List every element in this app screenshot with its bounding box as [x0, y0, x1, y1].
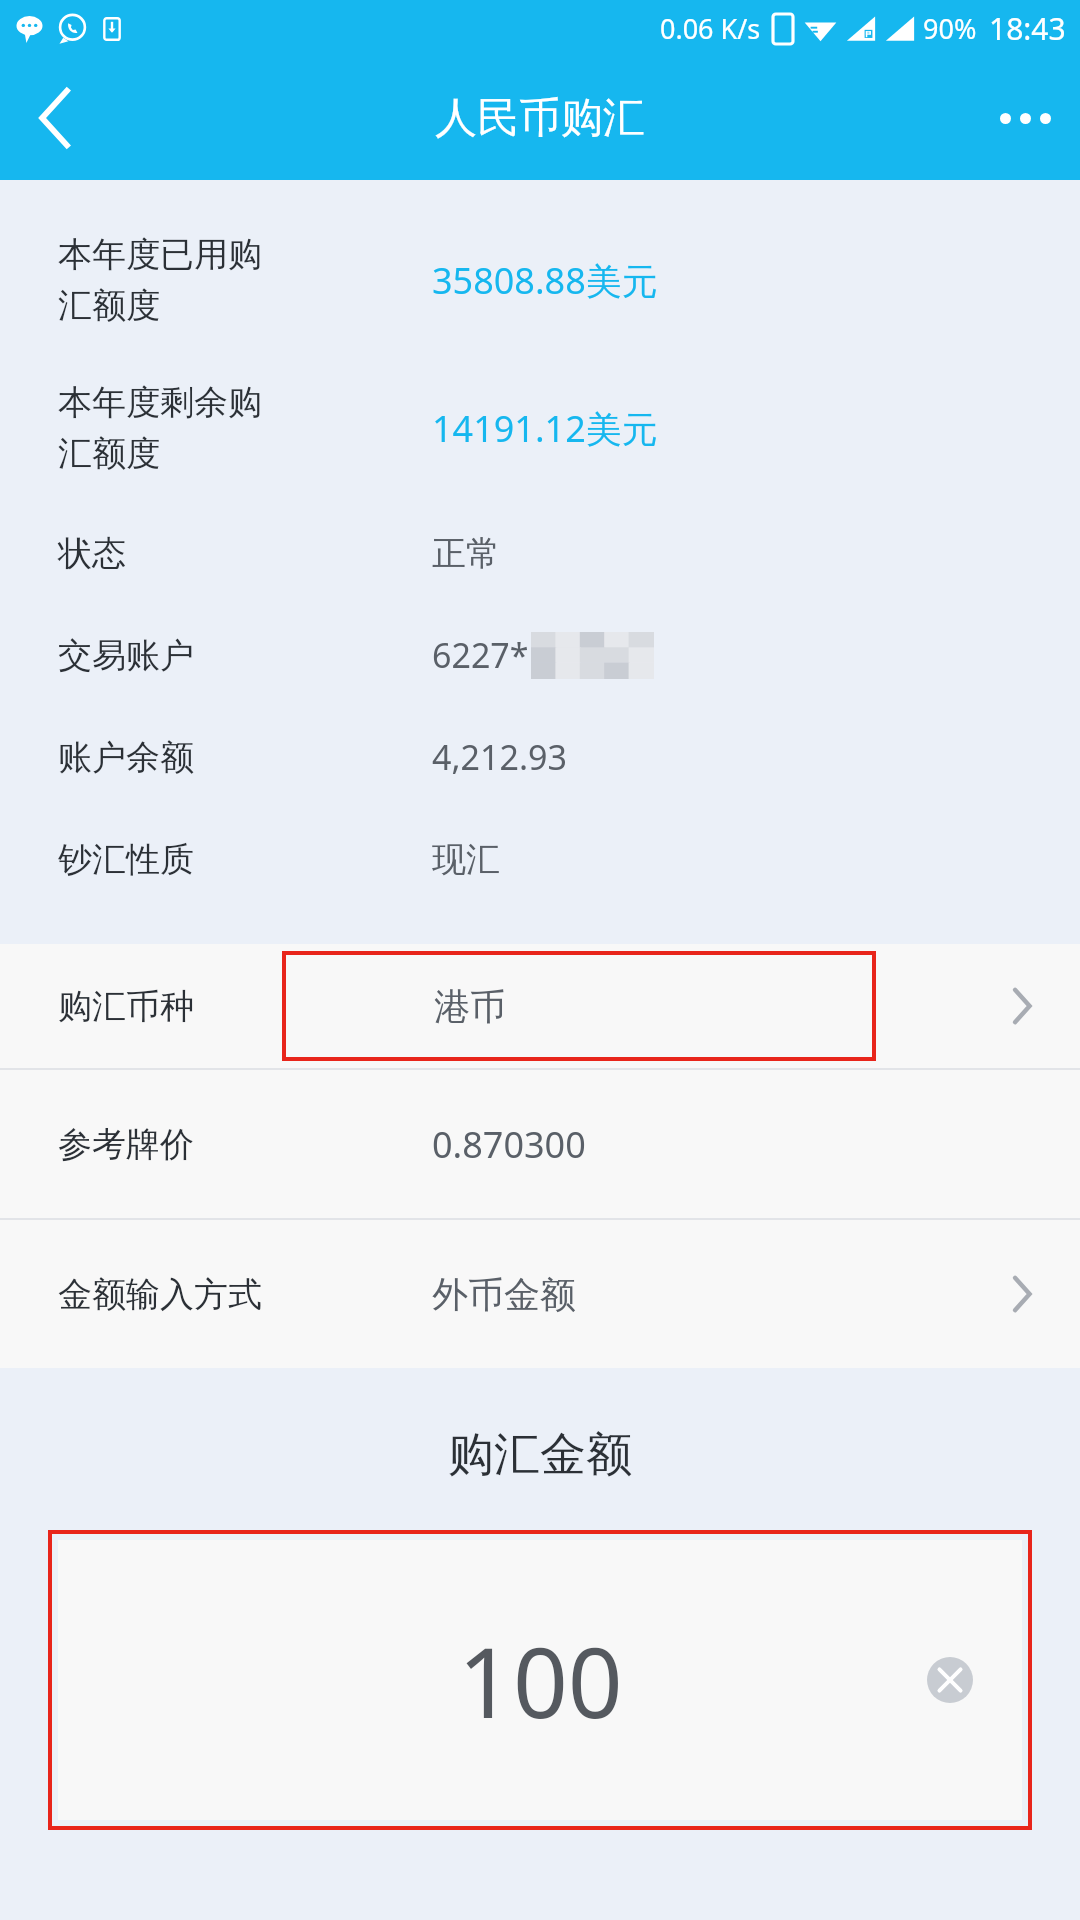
staticText: 状态 — [58, 532, 126, 575]
staticText: 90% — [923, 10, 977, 47]
staticText: 本年度已用购 — [58, 233, 262, 276]
button[interactable]: Back — [0, 63, 110, 173]
staticText: 港币 — [434, 984, 506, 1029]
staticText: 购汇币种 — [58, 985, 194, 1028]
staticText: 现汇 — [432, 838, 500, 881]
staticText: 参考牌价 — [58, 1123, 194, 1166]
button[interactable]: 金额输入方式 — [0, 1220, 1080, 1368]
staticText: 金额输入方式 — [58, 1273, 262, 1316]
staticText: 4,212.93 — [432, 734, 567, 780]
staticText: 0.870300 — [432, 1120, 586, 1169]
staticText: 14191.12美元 — [432, 404, 658, 453]
staticText: 0.06 K/s — [660, 10, 761, 47]
staticText: 本年度剩余购 — [58, 381, 262, 424]
staticText: 外币金额 — [432, 1272, 576, 1317]
staticText: 人民币购汇 — [435, 92, 645, 145]
staticText: 35808.88美元 — [432, 256, 658, 305]
staticText: 100 — [458, 1615, 623, 1746]
button[interactable]: 100 — [58, 1540, 1022, 1820]
staticText: 购汇金额 — [0, 1426, 1080, 1484]
staticText: 钞汇性质 — [58, 838, 194, 881]
staticText: 正常 — [432, 532, 500, 575]
staticText: 6227* — [432, 632, 529, 678]
staticText: 汇额度 — [58, 432, 160, 475]
button[interactable]: 购汇币种 — [0, 944, 1080, 1068]
staticText: 18:43 — [989, 8, 1066, 49]
button[interactable]: More options — [970, 63, 1080, 173]
button[interactable]: Clear — [922, 1652, 978, 1708]
staticText: 账户余额 — [58, 736, 194, 779]
staticText: 汇额度 — [58, 284, 160, 327]
staticText: 交易账户 — [58, 634, 194, 677]
